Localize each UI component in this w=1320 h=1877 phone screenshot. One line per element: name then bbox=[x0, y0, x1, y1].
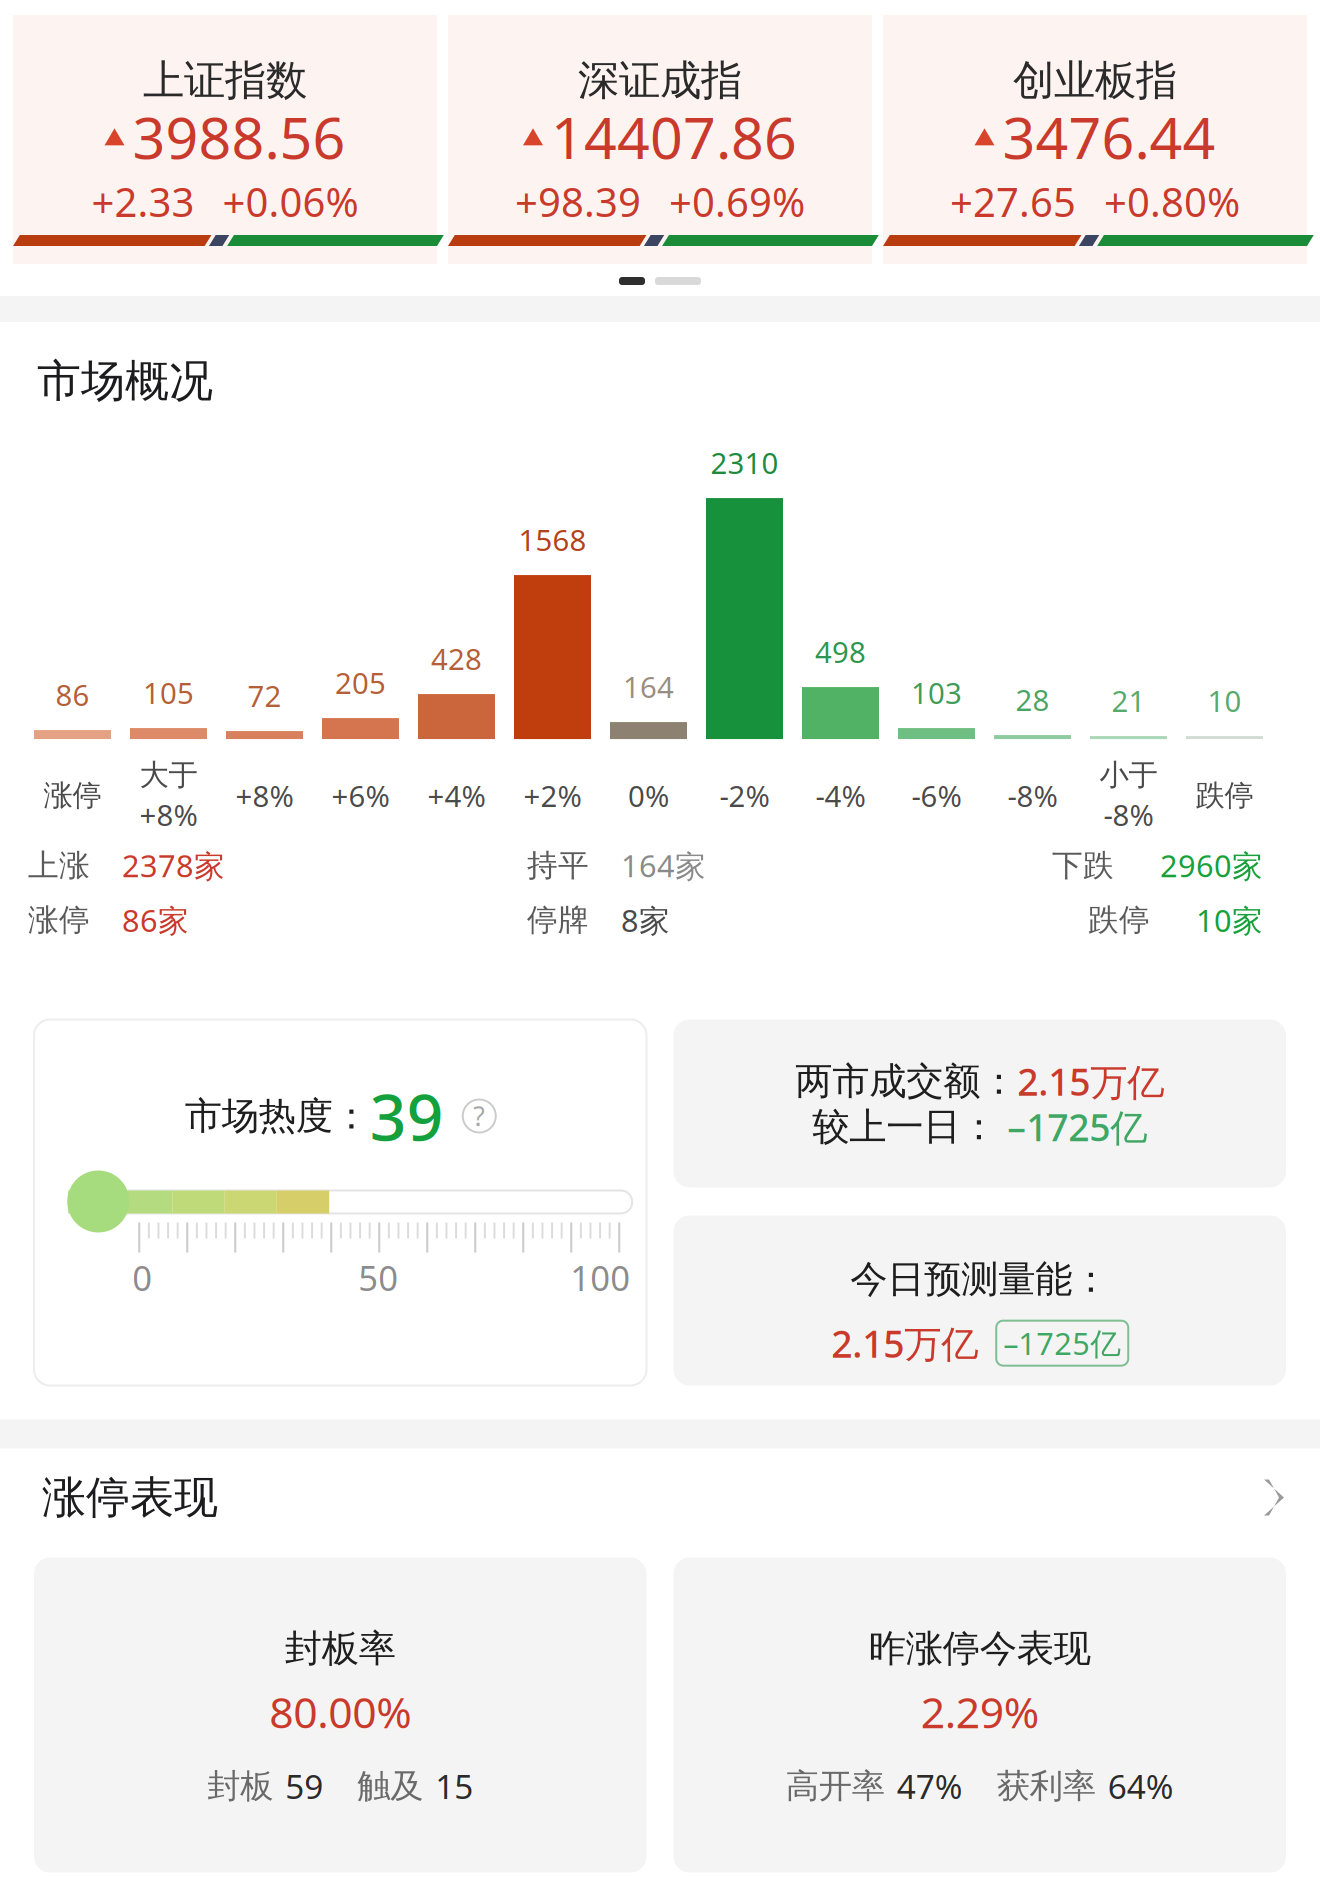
staticText: +2.33 bbox=[91, 175, 194, 228]
staticText: 103 bbox=[911, 673, 962, 712]
staticText: 2960家 bbox=[1160, 845, 1263, 886]
staticText: +4% bbox=[427, 776, 485, 815]
staticText: 1568 bbox=[518, 520, 586, 559]
button[interactable]: 涨停表现 bbox=[0, 1448, 1320, 1557]
button[interactable]: 封板率 bbox=[34, 1557, 646, 1872]
staticText: 昨涨停今表现 bbox=[869, 1625, 1091, 1671]
staticText: 86家 bbox=[122, 900, 189, 940]
staticText: 0% bbox=[628, 776, 669, 815]
staticText: 持平 bbox=[527, 847, 589, 884]
staticText: 较上一日： bbox=[812, 1104, 997, 1150]
staticText: 下跌 bbox=[1052, 847, 1114, 884]
staticText: 2.29% bbox=[921, 1683, 1039, 1740]
staticText: 2.15万亿 bbox=[1017, 1056, 1164, 1106]
staticText: 封板率 bbox=[285, 1625, 396, 1671]
staticText: 164 bbox=[623, 667, 674, 706]
button[interactable]: 创业板指 bbox=[883, 15, 1307, 264]
staticText: +0.06% bbox=[222, 175, 358, 228]
button[interactable]: 上证指数 bbox=[13, 15, 437, 264]
staticText: 涨停 bbox=[28, 901, 90, 939]
staticText: 大于 bbox=[139, 757, 197, 793]
staticText: 21 bbox=[1111, 681, 1145, 720]
staticText: 14407.86 bbox=[551, 99, 797, 175]
staticText: –1725亿 bbox=[1003, 1323, 1121, 1363]
staticText: 8家 bbox=[621, 900, 670, 940]
staticText: 64% bbox=[1108, 1764, 1174, 1808]
staticText: 2.15万亿 bbox=[831, 1318, 978, 1368]
staticText: 28 bbox=[1015, 680, 1049, 719]
staticText: 今日预测量能： bbox=[850, 1256, 1109, 1302]
staticText: 获利率 bbox=[997, 1766, 1096, 1807]
button[interactable]: 昨涨停今表现 bbox=[673, 1557, 1286, 1872]
staticText: 市场概况 bbox=[37, 354, 213, 408]
staticText: 59 bbox=[285, 1764, 323, 1808]
staticText: 深证成指 bbox=[578, 55, 742, 106]
staticText: 105 bbox=[143, 673, 194, 712]
staticText: 10 bbox=[1207, 681, 1241, 720]
staticText: 涨停表现 bbox=[42, 1470, 218, 1524]
staticText: 2378家 bbox=[122, 845, 225, 886]
staticText: 100 bbox=[570, 1254, 630, 1300]
staticText: 2310 bbox=[710, 443, 778, 482]
staticText: +98.39 bbox=[515, 175, 641, 228]
staticText: +2% bbox=[523, 776, 581, 815]
staticText: 0 bbox=[132, 1254, 152, 1300]
staticText: 80.00% bbox=[269, 1683, 411, 1740]
staticText: 上涨 bbox=[28, 847, 90, 884]
staticText: 50 bbox=[358, 1254, 398, 1300]
staticText: 两市成交额： bbox=[795, 1058, 1017, 1104]
staticText: 3988.56 bbox=[132, 99, 345, 175]
staticText: 小于 bbox=[1099, 757, 1157, 793]
staticText: 164家 bbox=[621, 845, 706, 886]
staticText: 市场热度： bbox=[185, 1093, 370, 1139]
staticText: -8% bbox=[1007, 776, 1057, 815]
staticText: 触及 bbox=[357, 1766, 423, 1807]
staticText: 创业板指 bbox=[1013, 55, 1177, 106]
staticText: +0.80% bbox=[1104, 175, 1240, 228]
staticText: 跌停 bbox=[1088, 901, 1150, 939]
staticText: +6% bbox=[331, 776, 389, 815]
staticText: 428 bbox=[431, 639, 482, 678]
staticText: 205 bbox=[335, 663, 386, 702]
staticText: -8% bbox=[1103, 795, 1153, 834]
staticText: 15 bbox=[435, 1764, 473, 1808]
staticText: -2% bbox=[719, 776, 769, 815]
staticText: 47% bbox=[897, 1764, 963, 1808]
staticText: -4% bbox=[815, 776, 865, 815]
staticText: 涨停 bbox=[43, 777, 101, 813]
staticText: 跌停 bbox=[1195, 777, 1253, 813]
staticText: +0.69% bbox=[669, 175, 805, 228]
staticText: 86 bbox=[55, 675, 89, 714]
staticText: 封板 bbox=[207, 1766, 273, 1807]
staticText: –1725亿 bbox=[997, 1102, 1147, 1152]
staticText: -6% bbox=[911, 776, 961, 815]
staticText: 10家 bbox=[1196, 900, 1263, 940]
staticText: 498 bbox=[815, 632, 866, 671]
button[interactable]: 深证成指 bbox=[448, 15, 872, 264]
staticText: 上证指数 bbox=[143, 55, 307, 106]
staticText: +8% bbox=[235, 776, 293, 815]
staticText: 3476.44 bbox=[1002, 99, 1215, 175]
staticText: 高开率 bbox=[786, 1766, 885, 1807]
staticText: 39 bbox=[370, 1073, 444, 1158]
staticText: 停牌 bbox=[527, 901, 589, 939]
staticText: +27.65 bbox=[950, 175, 1076, 228]
staticText: +8% bbox=[139, 795, 197, 834]
staticText: ? bbox=[473, 1098, 485, 1134]
staticText: 72 bbox=[247, 676, 281, 715]
